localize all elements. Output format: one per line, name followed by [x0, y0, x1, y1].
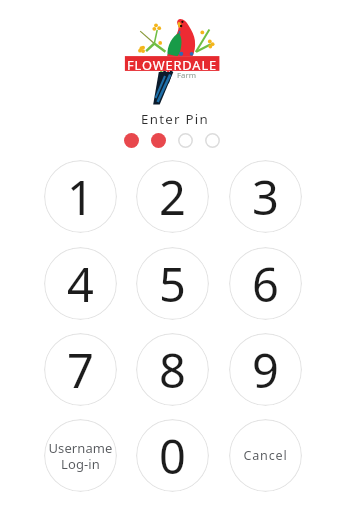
staticText: 7 [67, 338, 94, 402]
button[interactable]: 9 [229, 333, 302, 406]
staticText: 1 [67, 165, 94, 229]
button[interactable]: 8 [136, 333, 209, 406]
staticText: 6 [252, 252, 279, 316]
staticText: 2 [159, 165, 186, 229]
staticText: 8 [159, 338, 186, 402]
staticText: Enter Pin [141, 110, 210, 128]
staticText: Farm [177, 70, 196, 81]
button[interactable]: Username Log-in [44, 419, 117, 492]
button[interactable]: 3 [229, 160, 302, 233]
button[interactable]: 4 [44, 247, 117, 320]
button[interactable]: 6 [229, 247, 302, 320]
staticText: 5 [159, 252, 186, 316]
staticText: Cancel [243, 447, 288, 464]
button[interactable]: 2 [136, 160, 209, 233]
staticText: 4 [67, 252, 94, 316]
button[interactable]: 7 [44, 333, 117, 406]
staticText: 0 [159, 424, 186, 488]
staticText: 9 [252, 338, 279, 402]
staticText: 3 [252, 165, 279, 229]
button[interactable]: Cancel [229, 419, 302, 492]
staticText: Username Log-in [48, 439, 113, 472]
button[interactable]: 1 [44, 160, 117, 233]
button[interactable]: 0 [136, 419, 209, 492]
button[interactable]: 5 [136, 247, 209, 320]
staticText: FLOWERDALE [127, 56, 218, 71]
